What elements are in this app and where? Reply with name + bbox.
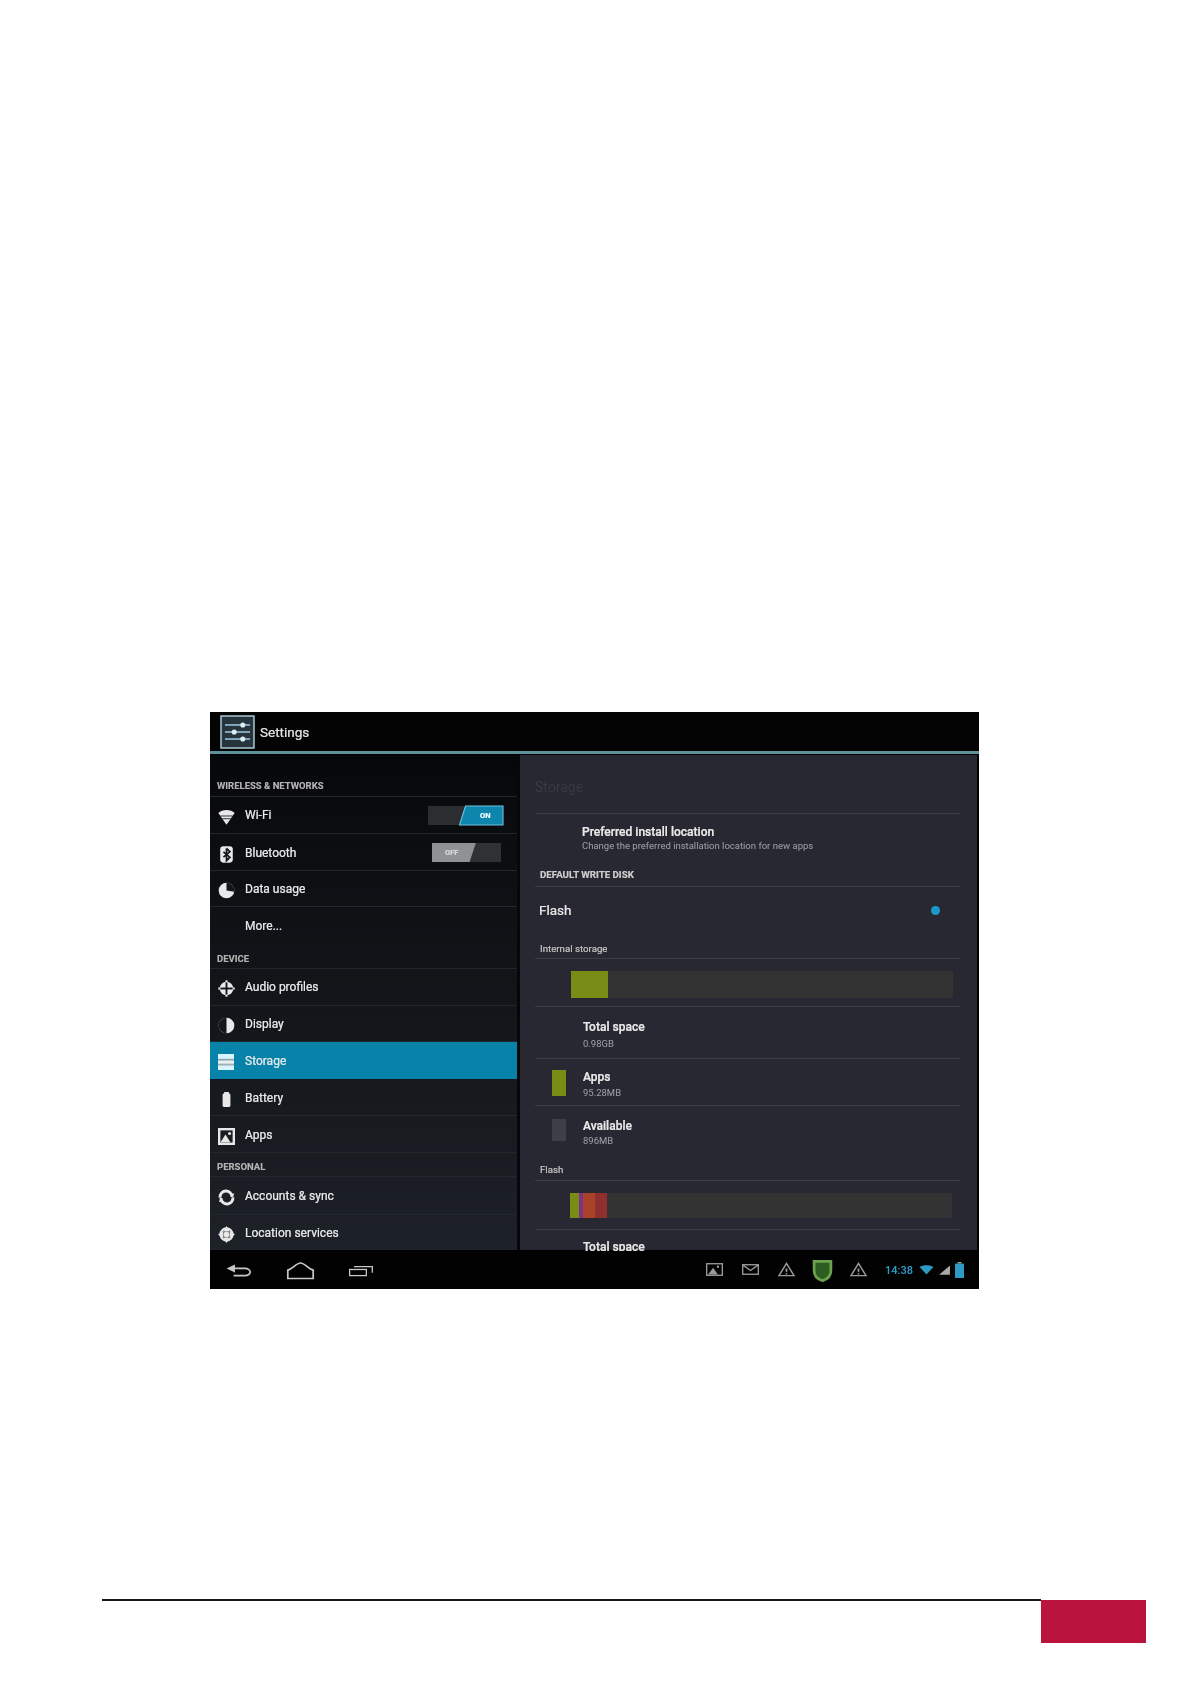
staticText: Flash (540, 1164, 564, 1175)
staticText: Flash (539, 902, 572, 918)
staticText: Bluetooth (245, 846, 297, 860)
staticText: Audio profiles (245, 980, 319, 994)
button[interactable]: Recents (340, 1253, 382, 1287)
button[interactable]: Audio profiles (210, 968, 517, 1006)
staticText: 0.98GB (583, 1038, 614, 1049)
staticText: Total space (583, 1240, 645, 1254)
button[interactable]: Apps (210, 1116, 517, 1153)
staticText: ON (480, 811, 491, 820)
staticText: Apps (583, 1070, 611, 1084)
button[interactable]: Accounts & sync (210, 1176, 517, 1215)
button[interactable]: OFF (432, 843, 501, 862)
staticText: DEFAULT WRITE DISK (540, 869, 634, 880)
staticText: Display (245, 1017, 284, 1031)
staticText: Internal storage (540, 943, 608, 954)
button[interactable]: Bluetooth (210, 834, 517, 871)
staticText: Wi-Fi (245, 808, 272, 822)
button[interactable]: Back (218, 1253, 260, 1287)
staticText: 14:38 (885, 1264, 913, 1277)
button[interactable]: Wi-Fi (210, 796, 517, 834)
staticText: Location services (245, 1226, 339, 1240)
staticText: Settings (260, 724, 310, 740)
staticText: Preferred install location (582, 825, 715, 839)
staticText: Storage (245, 1054, 287, 1068)
staticText: 896MB (583, 1135, 614, 1146)
staticText: More... (245, 919, 283, 933)
staticText: OFF (445, 848, 459, 857)
staticText: Accounts & sync (245, 1189, 334, 1203)
button[interactable]: Storage (210, 1042, 517, 1079)
staticText: Available (583, 1119, 632, 1133)
staticText: Change the preferred installation locati… (582, 840, 814, 851)
staticText: Battery (245, 1091, 284, 1105)
staticText: 95.28MB (583, 1087, 622, 1098)
button[interactable]: More... (210, 907, 517, 944)
staticText: Apps (245, 1128, 273, 1142)
button[interactable]: ON (428, 806, 503, 825)
staticText: Data usage (245, 882, 306, 896)
button[interactable]: Location services (210, 1215, 517, 1250)
button[interactable]: Display (210, 1006, 517, 1042)
button[interactable]: Battery (210, 1079, 517, 1116)
staticText: DEVICE (217, 953, 250, 964)
button[interactable] (931, 906, 940, 915)
button[interactable]: Home (279, 1253, 321, 1287)
staticText: Storage (535, 779, 584, 795)
staticText: Total space (583, 1020, 645, 1034)
staticText: WIRELESS & NETWORKS (217, 780, 324, 791)
button[interactable]: Data usage (210, 871, 517, 907)
staticText: PERSONAL (217, 1161, 266, 1172)
